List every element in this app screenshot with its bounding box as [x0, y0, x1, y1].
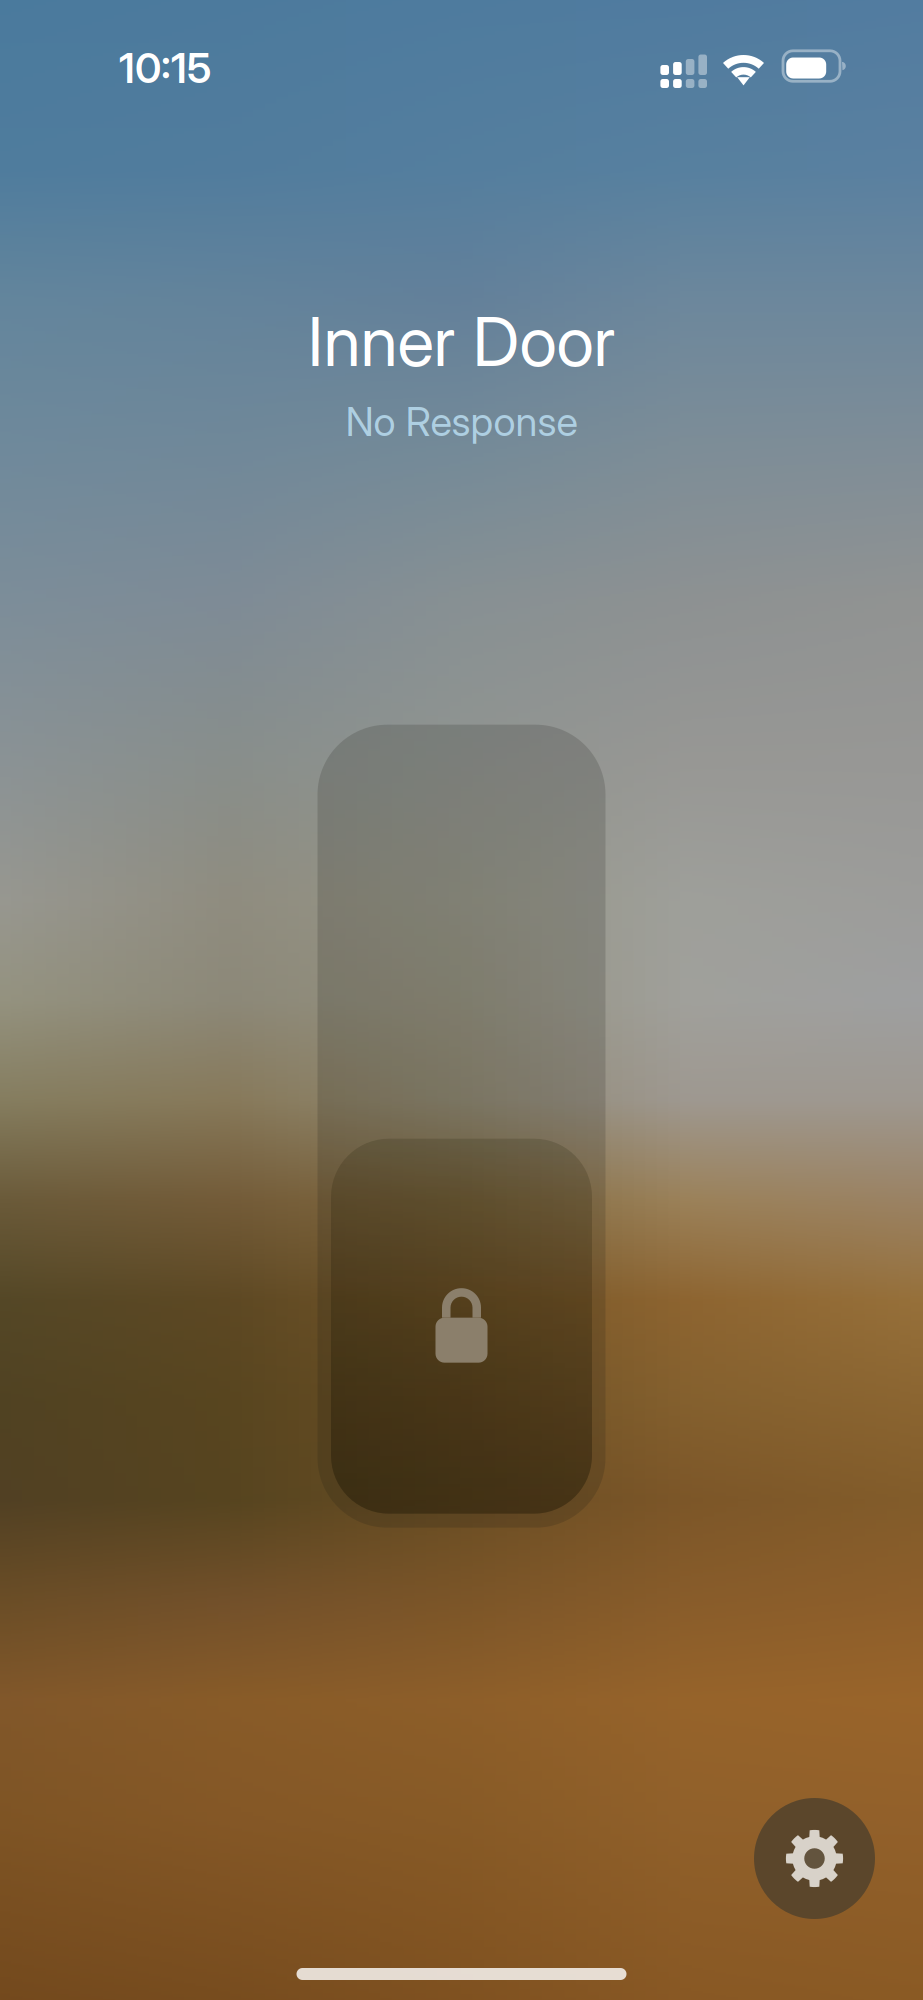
staticText: Inner Door	[307, 300, 615, 382]
button[interactable]: Settings	[754, 1798, 875, 1919]
staticText: No Response	[345, 397, 577, 446]
staticText: 10:15	[119, 43, 211, 93]
button[interactable]: Inner Door lock slider	[317, 725, 605, 1528]
